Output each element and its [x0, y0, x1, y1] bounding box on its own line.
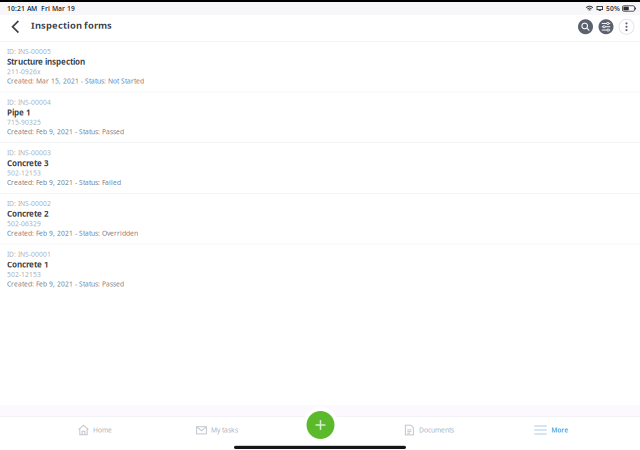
staticText: Concrete 1 [7, 259, 49, 270]
button[interactable]: More [490, 417, 612, 443]
staticText: Inspection forms [31, 19, 112, 31]
button[interactable]: ID: INS-00005 [0, 42, 640, 92]
button[interactable]: Search [578, 19, 593, 34]
staticText: ID: INS-00002 [7, 199, 51, 208]
staticText: Created: Feb 9, 2021 - Status: Passed [7, 279, 124, 288]
button[interactable]: More options [619, 19, 634, 34]
staticText: Pipe 1 [7, 107, 31, 118]
staticText: Home [93, 426, 112, 434]
staticText: ID: INS-00005 [7, 47, 51, 56]
staticText: 211-0926x [7, 67, 41, 76]
staticText: 715-90325 [7, 118, 41, 127]
button[interactable]: Filter [598, 19, 613, 34]
staticText: Concrete 2 [7, 208, 49, 219]
staticText: My tasks [211, 426, 238, 434]
button[interactable]: ID: INS-00001 [0, 244, 640, 294]
button[interactable]: ID: INS-00003 [0, 143, 640, 193]
staticText: Created: Feb 9, 2021 - Status: Overridde… [7, 229, 138, 238]
staticText: Created: Mar 15, 2021 - Status: Not Star… [7, 77, 144, 85]
staticText: Concrete 3 [7, 158, 49, 168]
staticText: 502-06329 [7, 219, 41, 228]
staticText: 502-12153 [7, 168, 41, 177]
staticText: ID: INS-00004 [7, 98, 51, 107]
staticText: ID: INS-00001 [7, 250, 51, 259]
staticText: ID: INS-00003 [7, 148, 51, 157]
staticText: Fri Mar 19 [41, 4, 75, 13]
staticText: 10:21 AM [7, 4, 37, 13]
button[interactable]: My tasks [156, 417, 278, 443]
button[interactable]: Add [302, 407, 338, 443]
staticText: Structure inspection [7, 56, 85, 67]
staticText: 502-12153 [7, 270, 41, 279]
button[interactable]: Documents [368, 417, 490, 443]
staticText: Documents [419, 426, 454, 434]
staticText: More [551, 426, 568, 434]
button[interactable]: ID: INS-00002 [0, 194, 640, 244]
staticText: Created: Feb 9, 2021 - Status: Passed [7, 127, 124, 136]
staticText: 50% [606, 4, 620, 13]
button[interactable]: ID: INS-00004 [0, 92, 640, 142]
button[interactable]: Home [34, 417, 156, 443]
staticText: Created: Feb 9, 2021 - Status: Failed [7, 178, 121, 187]
button[interactable]: Back [0, 13, 30, 40]
